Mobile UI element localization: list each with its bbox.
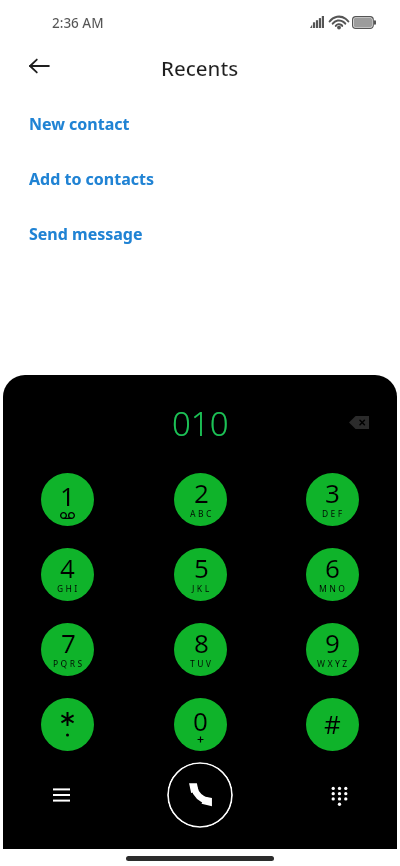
staticText: MNO: [319, 583, 348, 595]
staticText: 9: [325, 625, 340, 660]
button[interactable]: 0: [174, 698, 227, 751]
button[interactable]: 8: [174, 623, 227, 676]
staticText: 2:36 AM: [52, 14, 104, 32]
button[interactable]: 6: [306, 548, 359, 601]
staticText: PQRS: [53, 658, 85, 670]
button[interactable]: #: [306, 698, 359, 751]
staticText: TUV: [190, 658, 214, 670]
staticText: 7: [61, 625, 76, 660]
staticText: DEF: [322, 508, 345, 520]
button[interactable]: 4: [41, 548, 94, 601]
button[interactable]: 1: [41, 473, 94, 526]
staticText: Send message: [29, 223, 143, 245]
staticText: #: [324, 706, 341, 741]
button[interactable]: 3: [306, 473, 359, 526]
button[interactable]: Menu: [39, 773, 83, 817]
button[interactable]: New contact: [0, 100, 400, 148]
staticText: 6: [325, 550, 340, 585]
staticText: Add to contacts: [29, 168, 154, 190]
button[interactable]: 5: [174, 548, 227, 601]
button[interactable]: Call: [167, 762, 233, 828]
staticText: WXYZ: [317, 658, 350, 670]
staticText: New contact: [29, 113, 130, 135]
staticText: 4: [60, 550, 75, 585]
button[interactable]: 7: [41, 623, 94, 676]
staticText: 8: [194, 625, 209, 660]
button[interactable]: Backspace: [341, 404, 377, 440]
button[interactable]: Back: [18, 44, 61, 87]
button[interactable]: Send message: [0, 210, 400, 258]
staticText: 0: [193, 703, 208, 738]
staticText: ABC: [190, 508, 214, 520]
staticText: 1: [60, 478, 75, 513]
staticText: 2: [194, 475, 209, 510]
staticText: 3: [325, 475, 340, 510]
staticText: 5: [194, 550, 209, 585]
button[interactable]: Add to contacts: [0, 155, 400, 203]
button[interactable]: Dialpad: [317, 773, 361, 817]
staticText: JKL: [192, 583, 212, 595]
staticText: Recents: [161, 54, 239, 82]
button[interactable]: 9: [306, 623, 359, 676]
button[interactable]: 2: [174, 473, 227, 526]
button[interactable]: [41, 698, 94, 751]
staticText: GHI: [57, 583, 80, 595]
staticText: 010: [172, 401, 229, 446]
